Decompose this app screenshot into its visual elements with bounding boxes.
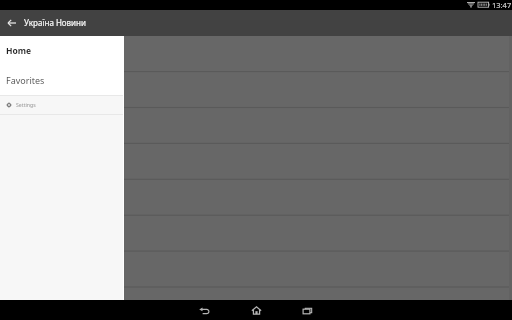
button[interactable]: Favorites	[0, 65, 124, 95]
button[interactable]: Home	[246, 300, 266, 320]
staticText: Home	[6, 45, 32, 57]
button[interactable]: Back	[194, 300, 214, 320]
staticText: 13:47	[492, 0, 512, 10]
button[interactable]: Close navigation drawer	[0, 0, 512, 320]
button[interactable]: Settings	[0, 96, 124, 114]
button[interactable]: Home	[0, 36, 124, 65]
staticText: Україна Новини	[24, 17, 86, 28]
button[interactable]: Navigate up	[4, 15, 20, 31]
staticText: Settings	[16, 101, 36, 108]
button[interactable]: Recent apps	[297, 300, 317, 320]
staticText: Favorites	[6, 74, 45, 86]
